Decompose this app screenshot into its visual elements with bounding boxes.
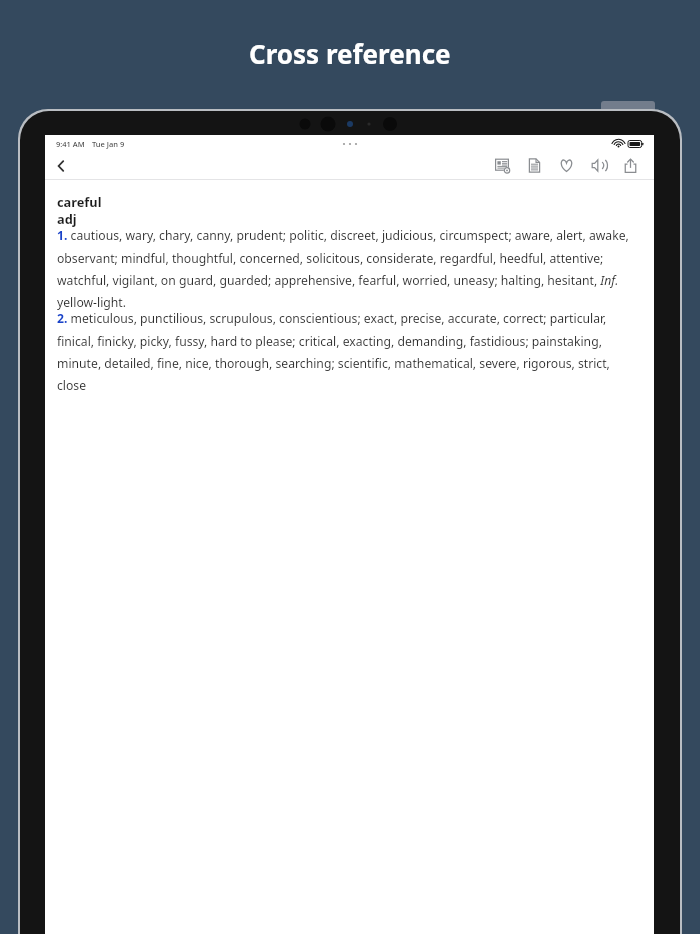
staticText: 2. meticulous, punctilious, scrupulous, …: [57, 310, 642, 393]
button[interactable]: Favourite: [556, 155, 577, 176]
button[interactable]: Share: [620, 155, 641, 176]
staticText: Cross reference: [249, 36, 451, 71]
staticText: Tue Jan 9: [92, 139, 125, 149]
button[interactable]: Back: [50, 155, 72, 177]
button[interactable]: Dictionary entry: [492, 155, 513, 176]
staticText: adj: [57, 210, 77, 227]
button[interactable]: Pronounce: [588, 155, 609, 176]
button[interactable]: Document: [524, 155, 545, 176]
staticText: 1. cautious, wary, chary, canny, prudent…: [57, 227, 642, 310]
staticText: careful: [57, 193, 102, 210]
staticText: 9:41 AM: [56, 139, 85, 149]
